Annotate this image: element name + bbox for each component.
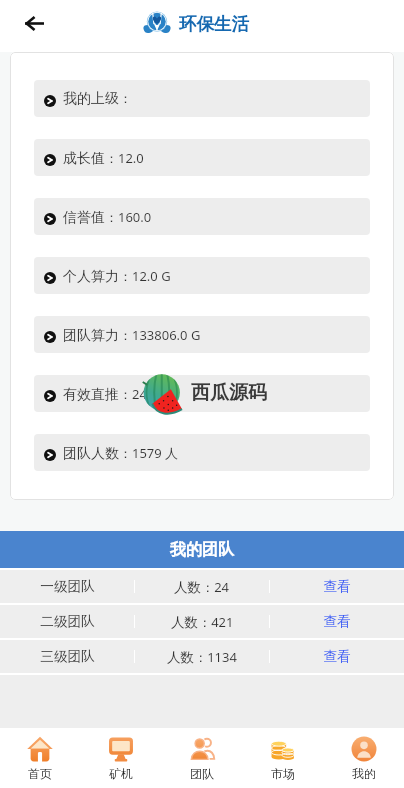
button[interactable]: 三级团队 [0, 640, 404, 673]
staticText: 首页 [28, 766, 52, 781]
button[interactable]: 个人算力：12.0 G [34, 257, 370, 294]
button[interactable]: 团队算力：133806.0 G [34, 316, 370, 353]
staticText: 有效直推：24 人 [63, 385, 164, 403]
button[interactable]: 有效直推：24 人 [34, 375, 370, 412]
button[interactable]: 我的 [323, 728, 404, 788]
button[interactable]: 团队 [161, 728, 242, 788]
staticText: 一级团队 [40, 578, 95, 595]
staticText: 我的 [352, 766, 376, 781]
staticText: 矿机 [109, 766, 133, 781]
button[interactable]: 信誉值：160.0 [34, 198, 370, 235]
button[interactable]: 首页 [0, 728, 80, 788]
staticText: 团队人数：1579 人 [63, 444, 179, 462]
staticText: 市场 [271, 766, 295, 781]
button[interactable]: 团队人数：1579 人 [34, 434, 370, 471]
button[interactable]: 一级团队 [0, 570, 404, 603]
staticText: 人数：1134 [167, 648, 237, 666]
staticText: 环保生活 [179, 13, 249, 35]
button[interactable]: 我的上级： [34, 80, 370, 117]
staticText: 二级团队 [40, 613, 95, 630]
staticText: 西瓜源码 [191, 381, 267, 405]
staticText: 三级团队 [40, 648, 95, 665]
staticText: 我的上级： [63, 90, 132, 108]
staticText: 人数：24 [174, 578, 230, 596]
button[interactable]: 成长值：12.0 [34, 139, 370, 176]
staticText: 个人算力：12.0 G [63, 267, 171, 285]
staticText: 信誉值：160.0 [63, 208, 152, 226]
button[interactable]: Back [12, 1, 56, 45]
staticText: 查看 [323, 648, 351, 665]
button[interactable]: 二级团队 [0, 605, 404, 638]
staticText: 团队 [190, 766, 214, 781]
staticText: 查看 [323, 613, 351, 630]
staticText: 人数：421 [171, 613, 234, 631]
staticText: 查看 [323, 578, 351, 595]
button[interactable]: 矿机 [80, 728, 161, 788]
staticText: 我的团队 [170, 540, 234, 560]
staticText: 成长值：12.0 [63, 149, 144, 167]
button[interactable]: 市场 [242, 728, 323, 788]
staticText: 团队算力：133806.0 G [63, 326, 201, 344]
